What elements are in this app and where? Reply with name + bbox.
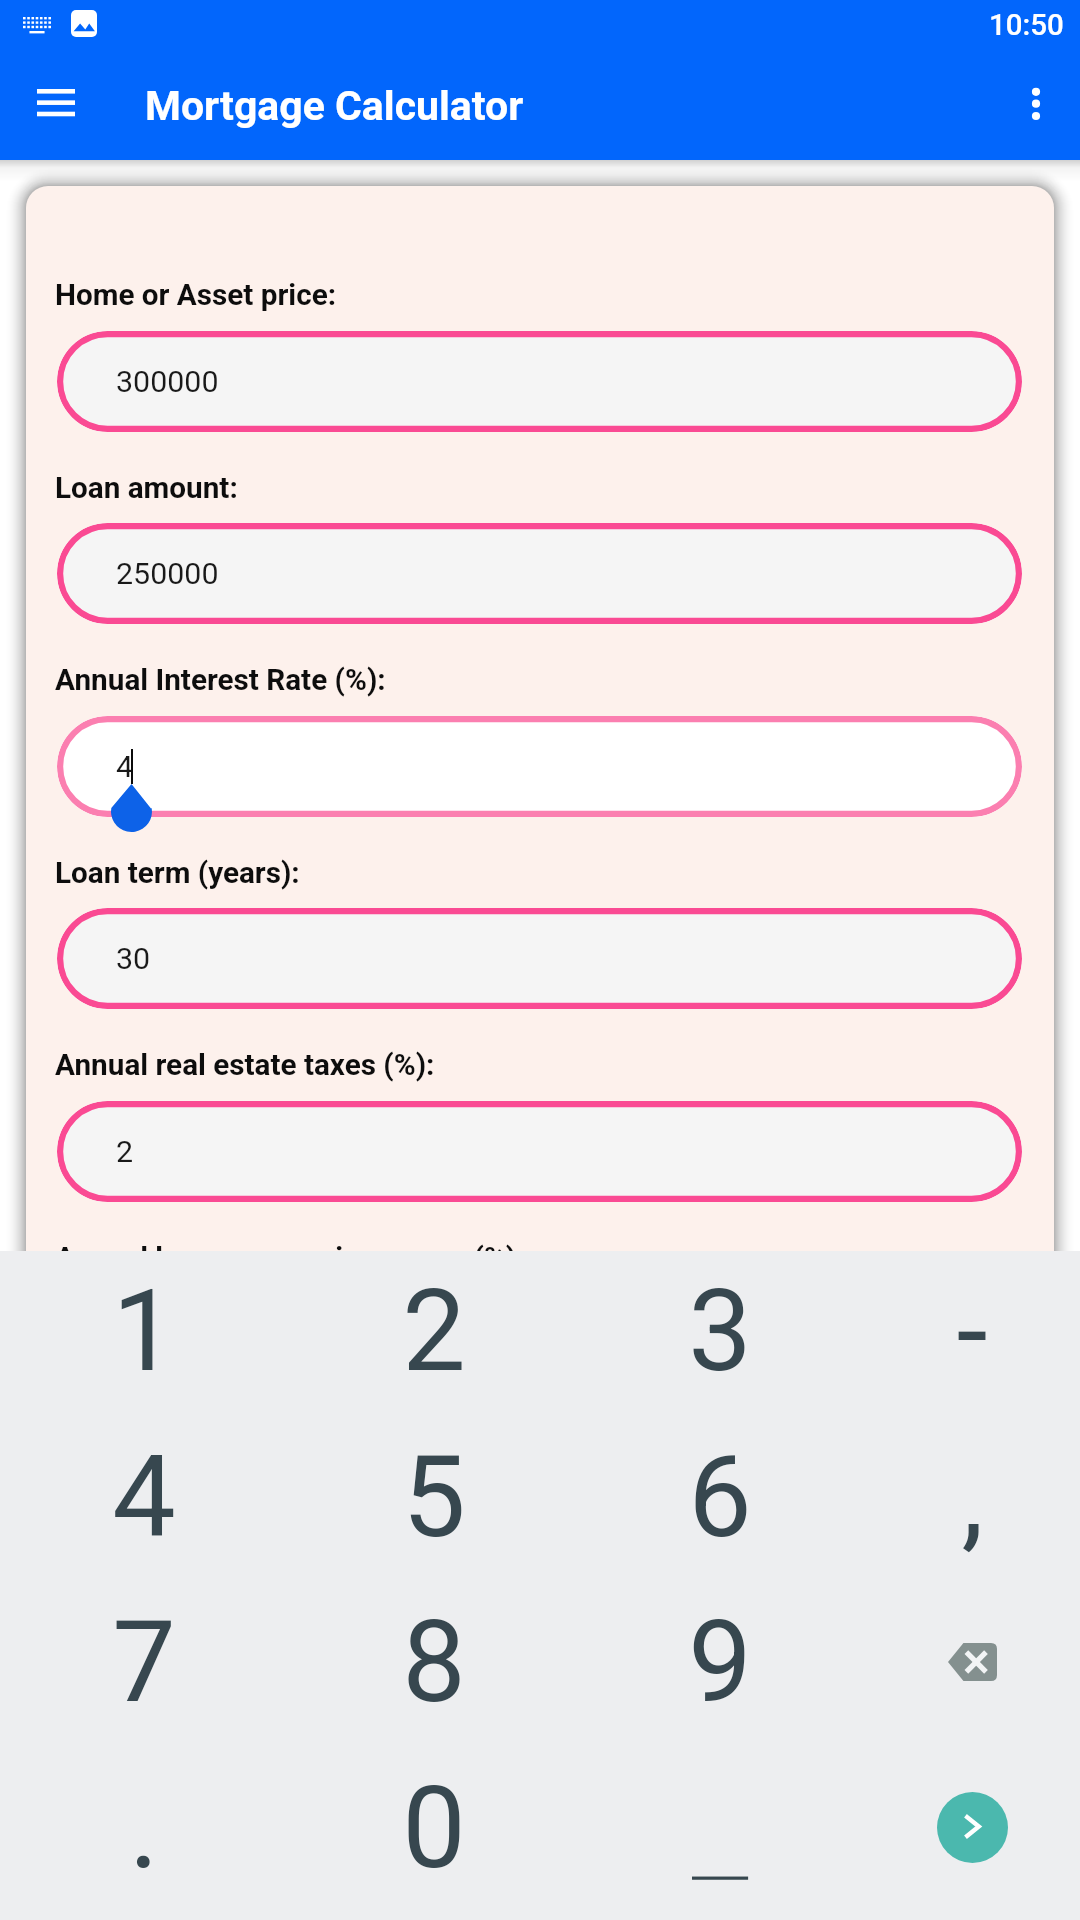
button[interactable]: 9 xyxy=(580,1579,860,1745)
button[interactable]: 1 xyxy=(0,1248,287,1414)
button[interactable]: 4 xyxy=(0,1414,287,1580)
button[interactable]: 7 xyxy=(0,1579,287,1745)
button[interactable]: 3 xyxy=(580,1248,860,1414)
button[interactable]: , xyxy=(860,1414,1080,1580)
button[interactable]: 30 xyxy=(57,908,1022,1009)
staticText: 2 xyxy=(116,1134,134,1170)
button[interactable]: More options xyxy=(992,45,1080,133)
staticText: 6 xyxy=(688,1431,752,1563)
staticText: - xyxy=(956,1265,988,1397)
staticText: 9 xyxy=(688,1596,752,1728)
staticText: 300000 xyxy=(116,364,219,400)
staticText: Loan term (years): xyxy=(55,855,300,890)
staticText: Loan amount: xyxy=(55,470,238,505)
button[interactable]: 0 xyxy=(287,1745,580,1911)
staticText: 5 xyxy=(402,1431,466,1563)
staticText: 1 xyxy=(112,1265,176,1397)
button[interactable]: 5 xyxy=(287,1414,580,1580)
staticText: Annual homeowners insurance (%): xyxy=(55,1240,525,1251)
button[interactable]: - xyxy=(860,1248,1080,1414)
staticText: 8 xyxy=(402,1596,466,1728)
staticText: 250000 xyxy=(116,556,219,592)
button[interactable]: Delete xyxy=(860,1579,1080,1745)
button[interactable]: 2 xyxy=(57,1101,1022,1202)
staticText: 30 xyxy=(116,941,151,977)
staticText: 4 xyxy=(112,1431,176,1563)
staticText: , xyxy=(961,1431,984,1563)
staticText: 4 xyxy=(116,749,134,785)
button[interactable]: 6 xyxy=(580,1414,860,1580)
staticText: 3 xyxy=(688,1265,752,1397)
staticText: Home or Asset price: xyxy=(55,277,337,312)
button[interactable]: 250000 xyxy=(57,523,1022,624)
staticText: . xyxy=(129,1762,159,1894)
staticText: 7 xyxy=(112,1596,176,1728)
button[interactable]: 8 xyxy=(287,1579,580,1745)
button[interactable]: Next field xyxy=(860,1745,1080,1911)
button[interactable]: 4 xyxy=(57,716,1022,817)
staticText: 0 xyxy=(402,1762,466,1894)
button[interactable]: 300000 xyxy=(57,331,1022,432)
button[interactable]: 2 xyxy=(287,1248,580,1414)
button[interactable]: Open navigation menu xyxy=(12,45,100,133)
button[interactable] xyxy=(580,1745,860,1911)
staticText: Mortgage Calculator xyxy=(145,82,524,130)
staticText: Annual Interest Rate (%): xyxy=(55,662,386,697)
staticText: 10:50 xyxy=(989,8,1064,43)
staticText: Annual real estate taxes (%): xyxy=(55,1047,435,1082)
staticText: 2 xyxy=(402,1265,466,1397)
button[interactable]: . xyxy=(0,1745,287,1911)
